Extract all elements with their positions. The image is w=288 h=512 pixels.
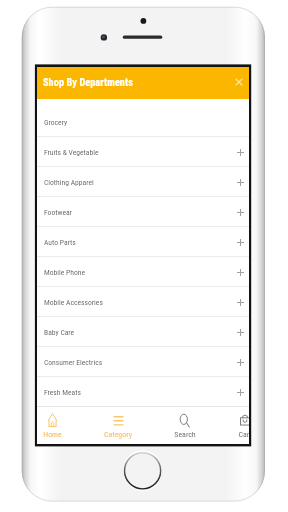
staticText: Shop By Departments	[43, 77, 133, 89]
staticText: Consumer Electrics	[44, 358, 103, 367]
button[interactable]: Fruits & Vegetable	[37, 137, 249, 167]
staticText: Search	[174, 430, 196, 439]
staticText: Fruits & Vegetable	[44, 148, 99, 157]
staticText: Clothing Apparel	[44, 178, 94, 187]
button[interactable]: Category	[89, 406, 147, 444]
staticText: Auto Parts	[44, 238, 76, 247]
button[interactable]: Home	[37, 406, 81, 444]
staticText: Category	[104, 430, 132, 439]
staticText: Grocery	[44, 118, 68, 127]
button[interactable]: Footwear	[37, 197, 249, 227]
button[interactable]: Cart	[216, 406, 249, 444]
button[interactable]: Search	[156, 406, 214, 444]
staticText: Mobile Phone	[44, 268, 86, 277]
staticText: Cart	[238, 430, 249, 439]
staticText: Fresh Meats	[44, 388, 81, 397]
button[interactable]: Grocery	[37, 107, 249, 137]
button[interactable]: Fresh Meats	[37, 377, 249, 407]
button[interactable]: Close	[231, 74, 247, 90]
staticText: Footwear	[44, 208, 72, 217]
staticText: Baby Care	[44, 328, 75, 337]
button[interactable]: Mobile Phone	[37, 257, 249, 287]
staticText: Home	[43, 430, 62, 439]
button[interactable]: Auto Parts	[37, 227, 249, 257]
button[interactable]: Baby Care	[37, 317, 249, 347]
button[interactable]: Consumer Electrics	[37, 347, 249, 377]
button[interactable]: Clothing Apparel	[37, 167, 249, 197]
staticText: Mobile Accessories	[44, 298, 103, 307]
button[interactable]: Mobile Accessories	[37, 287, 249, 317]
